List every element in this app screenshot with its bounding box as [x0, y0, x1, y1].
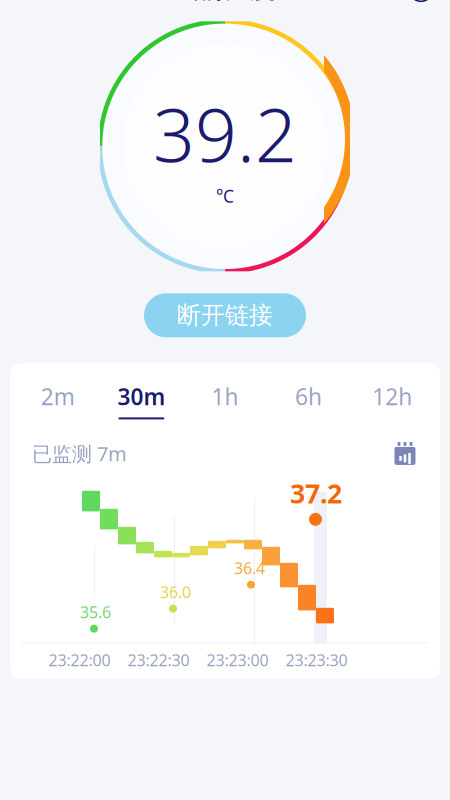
staticText: °C: [216, 184, 234, 207]
staticText: 35.6: [80, 601, 111, 623]
button[interactable]: 2m: [16, 375, 100, 425]
staticText: 23:22:00: [48, 649, 110, 671]
staticText: 当前温度: [175, 0, 275, 5]
button[interactable]: 6h: [267, 375, 350, 425]
staticText: 6h: [295, 381, 322, 411]
staticText: 36.4: [234, 557, 265, 579]
staticText: 2m: [41, 381, 75, 411]
button[interactable]: 30m: [100, 375, 183, 425]
staticText: 已监测 7m: [32, 440, 127, 467]
staticText: 39.2: [153, 85, 297, 182]
button[interactable]: 12h: [350, 375, 434, 425]
button[interactable]: Baby profile: [406, 0, 436, 4]
staticText: 23:22:30: [127, 649, 189, 671]
staticText: 23:23:00: [206, 649, 268, 671]
button[interactable]: History chart: [392, 439, 418, 467]
staticText: 12h: [372, 381, 412, 411]
button[interactable]: 断开链接: [144, 293, 306, 337]
staticText: 23:23:30: [285, 649, 347, 671]
staticText: 36.0: [160, 581, 191, 603]
staticText: 断开链接: [177, 301, 273, 330]
button[interactable]: 1h: [183, 375, 267, 425]
staticText: 30m: [117, 381, 165, 411]
staticText: 37.2: [290, 475, 342, 511]
staticText: 1h: [211, 381, 238, 411]
